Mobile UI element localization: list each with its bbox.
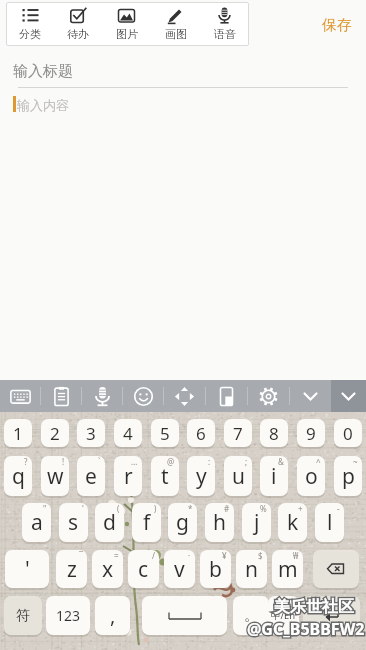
button[interactable] (0, 380, 40, 412)
button[interactable]: i (260, 456, 288, 496)
button[interactable] (331, 380, 366, 412)
staticText: " (43, 503, 47, 514)
button[interactable]: 待办 (54, 2, 102, 46)
button[interactable]: v (164, 550, 195, 588)
staticText: 待办 (67, 27, 89, 41)
staticText: 。 (244, 606, 259, 625)
button[interactable]: h (205, 503, 234, 542)
staticText: e (85, 462, 97, 491)
button[interactable]: s (59, 503, 88, 542)
staticText: m (278, 555, 298, 584)
staticText: ( (117, 503, 120, 514)
button[interactable]: e (77, 456, 105, 496)
staticText: x (102, 555, 114, 584)
button[interactable]: x (92, 550, 123, 588)
staticText: & (278, 456, 284, 467)
button[interactable]: g (168, 503, 197, 542)
button[interactable] (82, 380, 122, 412)
staticText: ~ (353, 456, 358, 467)
staticText: h (213, 508, 226, 537)
staticText: · (188, 550, 191, 561)
staticText: 1 (13, 422, 23, 445)
button[interactable]: 语音 (200, 2, 249, 46)
button[interactable] (142, 596, 227, 635)
button[interactable]: r (114, 456, 142, 496)
button[interactable]: 4 (114, 419, 142, 447)
button[interactable] (290, 380, 331, 412)
staticText: : (208, 456, 211, 467)
staticText: 语音 (214, 27, 236, 41)
button[interactable] (164, 380, 205, 412)
staticText: j (254, 508, 260, 537)
button[interactable]: c (128, 550, 159, 588)
staticText: 分类 (19, 27, 41, 41)
staticText: u (232, 462, 245, 491)
button[interactable]: k (278, 503, 307, 542)
button[interactable]: f (132, 503, 161, 542)
button[interactable]: y (187, 456, 215, 496)
button[interactable]: a (22, 503, 51, 542)
button[interactable]: p (334, 456, 362, 496)
button[interactable]: m (272, 550, 303, 588)
staticText: a (31, 508, 43, 537)
button[interactable]: l (315, 503, 344, 542)
staticText: 8 (269, 422, 279, 445)
staticText: ₩ (293, 550, 299, 561)
staticText: 2 (50, 422, 60, 445)
button[interactable] (41, 380, 81, 412)
button[interactable]: 。 (233, 596, 269, 635)
staticText: ) (154, 503, 157, 514)
button[interactable]: t (151, 456, 179, 496)
button[interactable]: b (200, 550, 231, 588)
staticText: i (271, 462, 277, 491)
button[interactable] (248, 380, 289, 412)
button[interactable] (206, 380, 247, 412)
staticText: 中/En (271, 609, 296, 622)
button[interactable]: q (4, 456, 32, 496)
staticText: 美乐世社区 (274, 597, 354, 617)
button[interactable]: 1 (4, 419, 32, 447)
button[interactable]: 3 (77, 419, 105, 447)
staticText: z (67, 555, 77, 584)
staticText: 3 (86, 422, 96, 445)
button[interactable]: 画图 (151, 2, 200, 46)
staticText: # (224, 503, 230, 514)
staticText: b (209, 555, 222, 584)
button[interactable]: d (95, 503, 124, 542)
button[interactable]: 9 (297, 419, 325, 447)
staticText: ` (98, 456, 101, 467)
staticText: 图片 (116, 27, 138, 41)
button[interactable]: 0 (334, 419, 362, 447)
button[interactable]: , (95, 596, 130, 635)
staticText: k (287, 508, 299, 537)
button[interactable]: 保存 (314, 8, 360, 43)
button[interactable]: o (297, 456, 325, 496)
staticText: c (138, 555, 149, 584)
button[interactable]: 6 (187, 419, 215, 447)
button[interactable]: j (242, 503, 271, 542)
button[interactable] (313, 550, 359, 588)
staticText: ! (62, 456, 65, 467)
button[interactable]: 2 (41, 419, 69, 447)
button[interactable]: 分类 (6, 2, 54, 46)
button[interactable]: 123 (46, 596, 90, 635)
staticText: 7 (233, 422, 243, 445)
staticText: ' (82, 503, 84, 514)
button[interactable]: 5 (151, 419, 179, 447)
button[interactable]: n (236, 550, 267, 588)
button[interactable]: u (224, 456, 252, 496)
button[interactable]: 符 (4, 596, 42, 635)
button[interactable]: w (41, 456, 69, 496)
button[interactable]: 8 (260, 419, 288, 447)
button[interactable] (123, 380, 163, 412)
button[interactable]: ' (5, 550, 49, 588)
staticText: $ (258, 550, 263, 561)
staticText: @GC_B5BBFW2 (247, 618, 365, 640)
staticText: n (245, 555, 258, 584)
button[interactable] (303, 596, 360, 635)
button[interactable]: 中/En (268, 596, 299, 635)
button[interactable]: 7 (224, 419, 252, 447)
button[interactable]: 图片 (102, 2, 151, 46)
staticText: + (298, 503, 303, 514)
button[interactable]: z (56, 550, 87, 588)
